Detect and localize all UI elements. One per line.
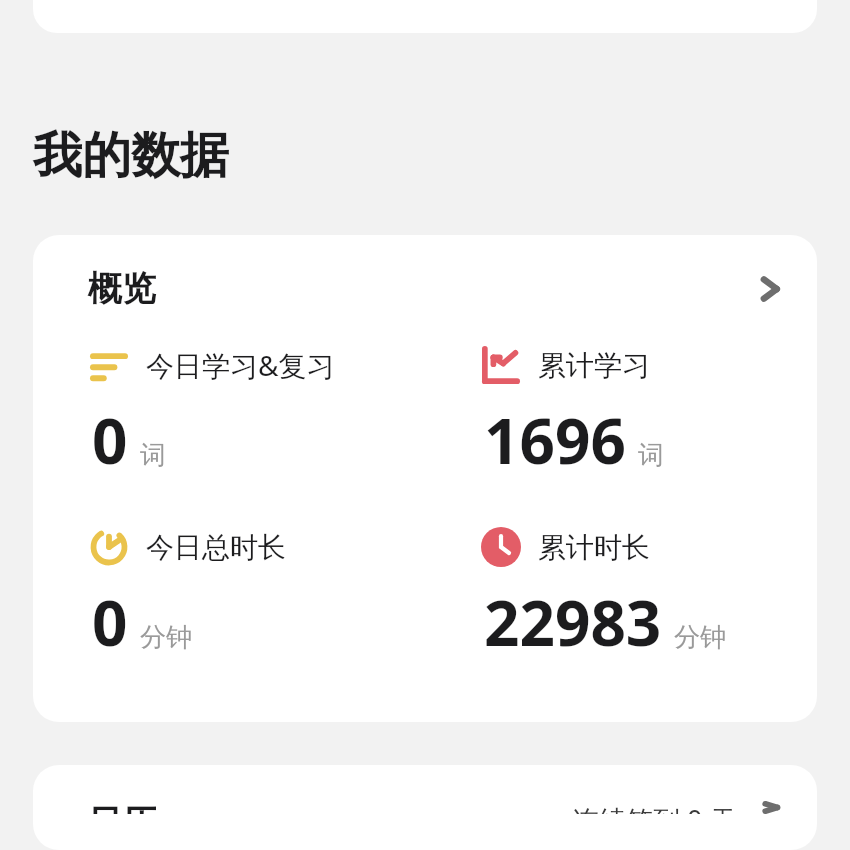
- other: Total duration: [481, 527, 521, 567]
- staticText: 分钟: [674, 621, 726, 654]
- staticText: 词: [140, 439, 166, 472]
- staticText: 0: [92, 398, 128, 482]
- staticText: 累计学习: [538, 348, 650, 383]
- staticText: 1696: [484, 398, 626, 482]
- staticText: 连续签到 0 天: [572, 801, 737, 814]
- staticText: 词: [638, 439, 664, 472]
- button[interactable]: Today duration: [33, 526, 425, 664]
- staticText: 概览: [88, 267, 156, 310]
- staticText: 今日总时长: [146, 530, 286, 565]
- other: Today study: [90, 346, 128, 384]
- other: Total study: [482, 346, 520, 384]
- staticText: 日历: [88, 801, 156, 814]
- staticText: 我的数据: [33, 125, 229, 187]
- button[interactable]: Total duration: [425, 526, 817, 664]
- staticText: 22983: [484, 580, 662, 664]
- other: Open: [753, 272, 787, 306]
- staticText: 0: [92, 580, 128, 664]
- button[interactable]: Today study: [33, 344, 425, 482]
- button[interactable]: 日历: [33, 765, 817, 850]
- other: Open: [755, 801, 787, 814]
- staticText: 今日学习&复习: [146, 346, 335, 384]
- staticText: 累计时长: [538, 530, 650, 565]
- staticText: 分钟: [140, 621, 192, 654]
- button[interactable]: Total study: [425, 344, 817, 482]
- other: Today duration: [89, 527, 129, 567]
- button[interactable]: 概览: [33, 235, 817, 324]
